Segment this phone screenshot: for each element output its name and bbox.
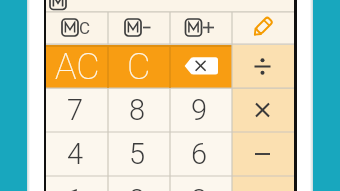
button[interactable]: [170, 45, 232, 88]
button[interactable]: [170, 88, 232, 132]
button[interactable]: [46, 88, 108, 132]
button[interactable]: [108, 12, 170, 45]
button[interactable]: [232, 176, 294, 191]
staticText: 1: [67, 183, 84, 191]
button[interactable]: [46, 12, 108, 45]
staticText: C: [127, 46, 151, 88]
button[interactable]: [108, 176, 170, 191]
staticText: 3: [191, 183, 208, 191]
button[interactable]: [108, 132, 170, 176]
button[interactable]: [170, 12, 232, 45]
button[interactable]: [170, 176, 232, 191]
staticText: 8: [129, 93, 146, 127]
staticText: 2: [129, 183, 146, 191]
staticText: 6: [191, 137, 208, 171]
button[interactable]: [232, 88, 294, 132]
staticText: 9: [191, 93, 208, 127]
button[interactable]: [46, 132, 108, 176]
button[interactable]: [170, 132, 232, 176]
button[interactable]: [108, 88, 170, 132]
button[interactable]: [46, 45, 108, 88]
button[interactable]: [108, 45, 170, 88]
staticText: C: [79, 18, 91, 38]
staticText: AC: [55, 46, 100, 88]
staticText: 7: [67, 93, 84, 127]
button[interactable]: [232, 45, 294, 88]
button[interactable]: [232, 132, 294, 176]
button[interactable]: [46, 176, 108, 191]
staticText: 5: [129, 137, 146, 171]
button[interactable]: [232, 12, 294, 45]
staticText: 4: [67, 137, 84, 171]
